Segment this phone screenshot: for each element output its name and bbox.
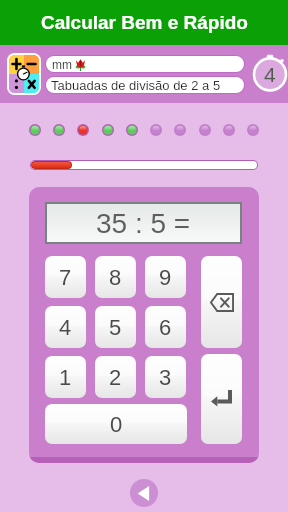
button[interactable]: 8 — [95, 256, 136, 298]
button[interactable]: 3 — [145, 356, 186, 398]
button[interactable]: Back — [130, 479, 158, 507]
staticText: Tabuadas de divisão de 2 a 5 — [51, 78, 221, 93]
button[interactable]: 4 — [45, 306, 86, 348]
button[interactable]: 6 — [145, 306, 186, 348]
staticText: 4 — [264, 63, 276, 86]
button[interactable]: 2 — [95, 356, 136, 398]
staticText: 5 — [109, 315, 122, 340]
button[interactable]: Calculator — [7, 53, 41, 95]
staticText: mm — [52, 58, 72, 71]
staticText: 9 — [159, 265, 172, 290]
button[interactable]: Enter — [201, 354, 242, 444]
staticText: 4 — [59, 315, 72, 340]
staticText: 6 — [159, 315, 172, 340]
button[interactable]: mm — [46, 56, 244, 72]
button[interactable]: 0 — [45, 404, 187, 444]
staticText: 2 — [109, 365, 122, 390]
staticText: 3 — [159, 365, 172, 390]
button[interactable]: 7 — [45, 256, 86, 298]
button[interactable]: Backspace — [201, 256, 242, 348]
staticText: Calcular Bem e Rápido — [41, 12, 248, 33]
staticText: 0 — [110, 412, 123, 437]
staticText: 7 — [59, 265, 72, 290]
staticText: 35 : 5 = — [96, 208, 191, 239]
button[interactable]: 5 — [95, 306, 136, 348]
staticText: 1 — [59, 365, 72, 390]
button[interactable]: Tabuadas de divisão de 2 a 5 — [46, 77, 244, 93]
button[interactable]: 1 — [45, 356, 86, 398]
button[interactable]: 9 — [145, 256, 186, 298]
staticText: 8 — [109, 265, 122, 290]
